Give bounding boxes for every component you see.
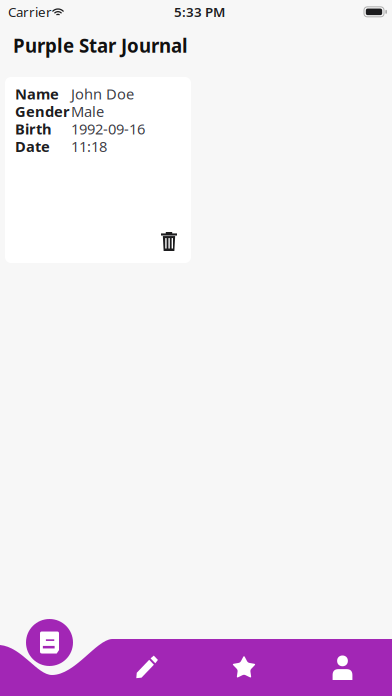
button[interactable]: Write [113, 642, 180, 692]
staticText: Name [15, 84, 59, 103]
staticText: Date [15, 136, 50, 156]
staticText: 5:33 PM [174, 3, 225, 21]
staticText: Purple Star Journal [13, 33, 188, 58]
button[interactable]: Delete entry [155, 226, 183, 257]
button[interactable]: Profile [309, 642, 375, 693]
button[interactable]: Favourites [209, 641, 278, 694]
staticText: Gender [15, 101, 70, 121]
staticText: Birth [15, 119, 52, 138]
button[interactable]: Journal [26, 619, 73, 666]
staticText: John Doe [71, 84, 134, 103]
staticText: Male [71, 101, 104, 121]
staticText: 11:18 [71, 136, 107, 156]
staticText: Carrier [8, 3, 52, 21]
staticText: 1992-09-16 [71, 119, 145, 138]
